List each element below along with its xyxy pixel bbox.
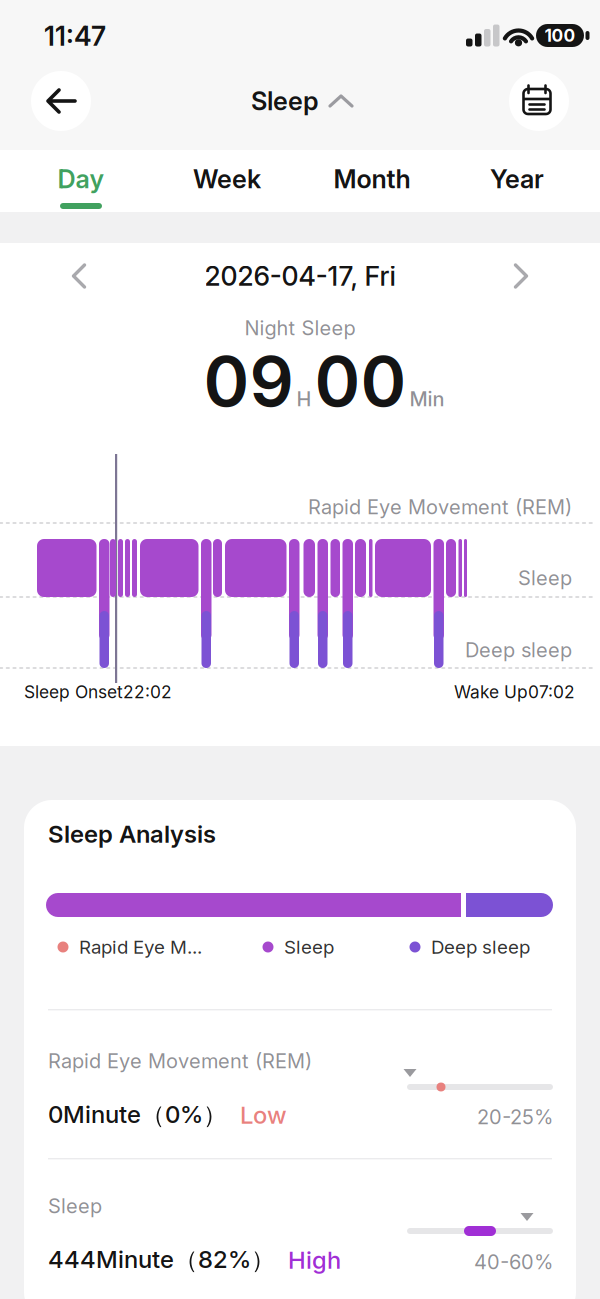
staticText: Sleep — [518, 566, 572, 590]
button[interactable]: Day — [11, 150, 151, 212]
staticText: Sleep Analysis — [48, 820, 216, 848]
staticText: 00 — [314, 340, 406, 422]
staticText: Night Sleep — [244, 316, 355, 340]
staticText: 11:47 — [44, 20, 106, 52]
staticText: Rapid Eye Movement (REM) — [48, 1049, 312, 1073]
staticText: 20-25% — [477, 1105, 553, 1129]
staticText: H — [296, 387, 311, 411]
staticText: 2026-04-17, Fri — [204, 260, 395, 292]
staticText: Rapid Eye M... — [79, 936, 202, 958]
staticText: Sleep — [284, 936, 334, 958]
staticText: High — [288, 1246, 341, 1274]
staticText: Low — [240, 1101, 287, 1129]
staticText: Sleep Onset22:02 — [24, 682, 172, 702]
button[interactable]: Back — [31, 71, 91, 131]
staticText: Year — [490, 164, 544, 194]
staticText: 100 — [544, 25, 575, 46]
button[interactable]: Sleep records — [509, 71, 569, 131]
button[interactable]: Week — [157, 150, 297, 212]
staticText: 444Minute（82%） — [48, 1245, 275, 1275]
staticText: Deep sleep — [465, 638, 572, 662]
staticText: Deep sleep — [431, 936, 530, 958]
button[interactable]: Previous day — [57, 254, 101, 298]
staticText: 0Minute（0%） — [48, 1100, 227, 1130]
staticText: Week — [193, 164, 261, 194]
button[interactable]: Next day — [499, 254, 543, 298]
staticText: Sleep — [251, 86, 319, 116]
button[interactable]: Sleep, collapse — [217, 75, 377, 127]
staticText: Month — [333, 164, 410, 194]
button[interactable]: Year — [447, 150, 587, 212]
staticText: Min — [409, 387, 444, 411]
staticText: 09 — [203, 340, 293, 422]
staticText: Day — [57, 164, 104, 194]
staticText: 40-60% — [474, 1250, 553, 1274]
staticText: Wake Up07:02 — [454, 682, 575, 702]
button[interactable]: Month — [302, 150, 442, 212]
staticText: Rapid Eye Movement (REM) — [308, 495, 572, 519]
staticText: Sleep — [48, 1194, 102, 1218]
